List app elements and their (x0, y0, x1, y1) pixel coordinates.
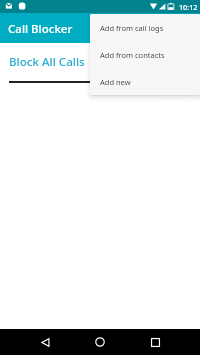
staticText: Call Blocker (8, 21, 73, 37)
button[interactable]: Add from call logs (90, 14, 200, 41)
button[interactable]: Add new (90, 68, 200, 95)
button[interactable]: Back (36, 333, 54, 351)
staticText: Add from call logs (100, 23, 164, 33)
button[interactable]: Recents (146, 333, 164, 351)
staticText: Add new (100, 77, 131, 87)
button[interactable]: Home (91, 333, 109, 351)
button[interactable]: Add from contacts (90, 41, 200, 68)
staticText: Add from contacts (100, 50, 165, 60)
button[interactable]: Block All Calls (0, 43, 100, 83)
staticText: Block All Calls (9, 54, 85, 70)
staticText: 10:12 (179, 2, 198, 12)
